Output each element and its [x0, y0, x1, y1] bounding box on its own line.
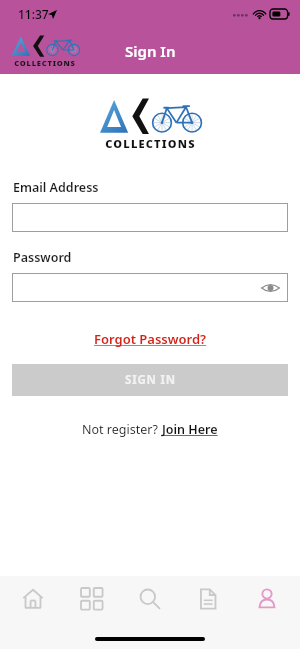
button[interactable]: Forgot Password?: [88, 328, 213, 350]
button[interactable]: Search: [125, 576, 175, 622]
button[interactable]: Categories: [67, 576, 117, 622]
staticText: Email Address: [13, 179, 99, 196]
staticText: Forgot Password?: [94, 330, 207, 348]
staticText: SIGN IN: [125, 372, 176, 388]
button[interactable]: Show password: [258, 276, 282, 300]
button[interactable]: SIGN IN: [12, 364, 288, 396]
button[interactable]: AK Collections home: [10, 34, 80, 68]
button[interactable]: Orders: [183, 576, 233, 622]
staticText: Password: [13, 249, 72, 266]
staticText: Sign In: [125, 41, 176, 61]
button[interactable]: Profile: [242, 576, 292, 622]
button[interactable]: Email Address input: [12, 203, 288, 232]
staticText: Not register?: [82, 421, 162, 438]
button[interactable]: Password input: [12, 273, 288, 302]
staticText: COLLECTIONS: [14, 58, 76, 68]
staticText: 11:37: [18, 6, 49, 22]
button[interactable]: Home: [8, 576, 58, 622]
staticText: Join Here: [162, 421, 218, 438]
button[interactable]: Join Here: [162, 421, 218, 438]
staticText: COLLECTIONS: [105, 136, 196, 151]
